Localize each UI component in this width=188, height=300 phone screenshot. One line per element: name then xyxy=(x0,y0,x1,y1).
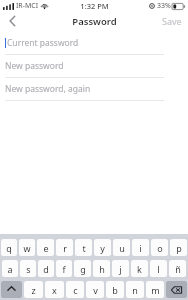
button[interactable]: j xyxy=(112,260,129,277)
staticText: IR-MCI xyxy=(16,1,39,11)
button[interactable]: h xyxy=(93,260,110,277)
staticText: ñ xyxy=(175,263,181,275)
staticText: e xyxy=(43,242,49,254)
staticText: Password xyxy=(72,15,117,28)
button[interactable]: u xyxy=(113,239,130,256)
staticText: n xyxy=(132,284,138,296)
button[interactable]: s xyxy=(20,260,36,277)
button[interactable]: g xyxy=(74,260,91,277)
button[interactable]: Shift xyxy=(1,281,22,298)
staticText: Save xyxy=(162,15,182,27)
button[interactable]: q xyxy=(1,239,17,256)
button[interactable]: Save xyxy=(162,15,182,27)
button[interactable]: y xyxy=(94,239,111,256)
staticText: s xyxy=(26,263,31,275)
staticText: o xyxy=(157,242,163,254)
button[interactable]: d xyxy=(38,260,54,277)
button[interactable]: f xyxy=(56,260,72,277)
staticText: 33% xyxy=(157,1,171,11)
staticText: New password, again xyxy=(5,83,91,95)
staticText: 1:32 PM xyxy=(80,1,109,11)
button[interactable]: m xyxy=(146,281,164,298)
staticText: h xyxy=(99,263,105,275)
button[interactable]: r xyxy=(56,239,73,256)
staticText: a xyxy=(7,263,13,275)
staticText: p xyxy=(176,242,182,254)
staticText: i xyxy=(139,242,142,254)
staticText: m xyxy=(151,284,160,296)
staticText: d xyxy=(43,263,49,275)
button[interactable]: l xyxy=(150,260,167,277)
button[interactable]: c xyxy=(66,281,84,298)
button[interactable]: z xyxy=(24,281,43,298)
staticText: y xyxy=(100,242,105,254)
button[interactable]: New password, again xyxy=(0,78,188,101)
button[interactable]: o xyxy=(151,239,168,256)
button[interactable]: t xyxy=(75,239,92,256)
button[interactable]: e xyxy=(37,239,54,256)
button[interactable]: x xyxy=(45,281,64,298)
staticText: k xyxy=(137,263,142,275)
button[interactable]: a xyxy=(2,260,18,277)
staticText: c xyxy=(73,284,78,296)
staticText: z xyxy=(31,284,36,296)
staticText: w xyxy=(23,242,31,254)
button[interactable]: i xyxy=(132,239,149,256)
button[interactable]: n xyxy=(126,281,144,298)
staticText: v xyxy=(93,284,98,296)
button[interactable]: Back xyxy=(0,12,24,30)
button[interactable]: Delete xyxy=(166,281,187,298)
staticText: r xyxy=(63,242,67,254)
staticText: g xyxy=(80,263,86,275)
button[interactable]: b xyxy=(106,281,124,298)
button[interactable]: v xyxy=(86,281,104,298)
staticText: l xyxy=(157,263,160,275)
staticText: x xyxy=(52,284,57,296)
staticText: t xyxy=(82,242,86,254)
button[interactable]: k xyxy=(131,260,148,277)
button[interactable]: ñ xyxy=(169,260,186,277)
staticText: f xyxy=(62,263,66,275)
staticText: j xyxy=(119,263,122,275)
staticText: u xyxy=(119,242,125,254)
staticText: New password xyxy=(5,60,64,72)
button[interactable]: w xyxy=(19,239,35,256)
button[interactable]: New password xyxy=(0,55,188,78)
button[interactable]: p xyxy=(170,239,187,256)
staticText: Current password xyxy=(7,37,79,49)
staticText: b xyxy=(112,284,118,296)
button[interactable]: Current password xyxy=(0,32,188,55)
staticText: q xyxy=(6,242,12,254)
